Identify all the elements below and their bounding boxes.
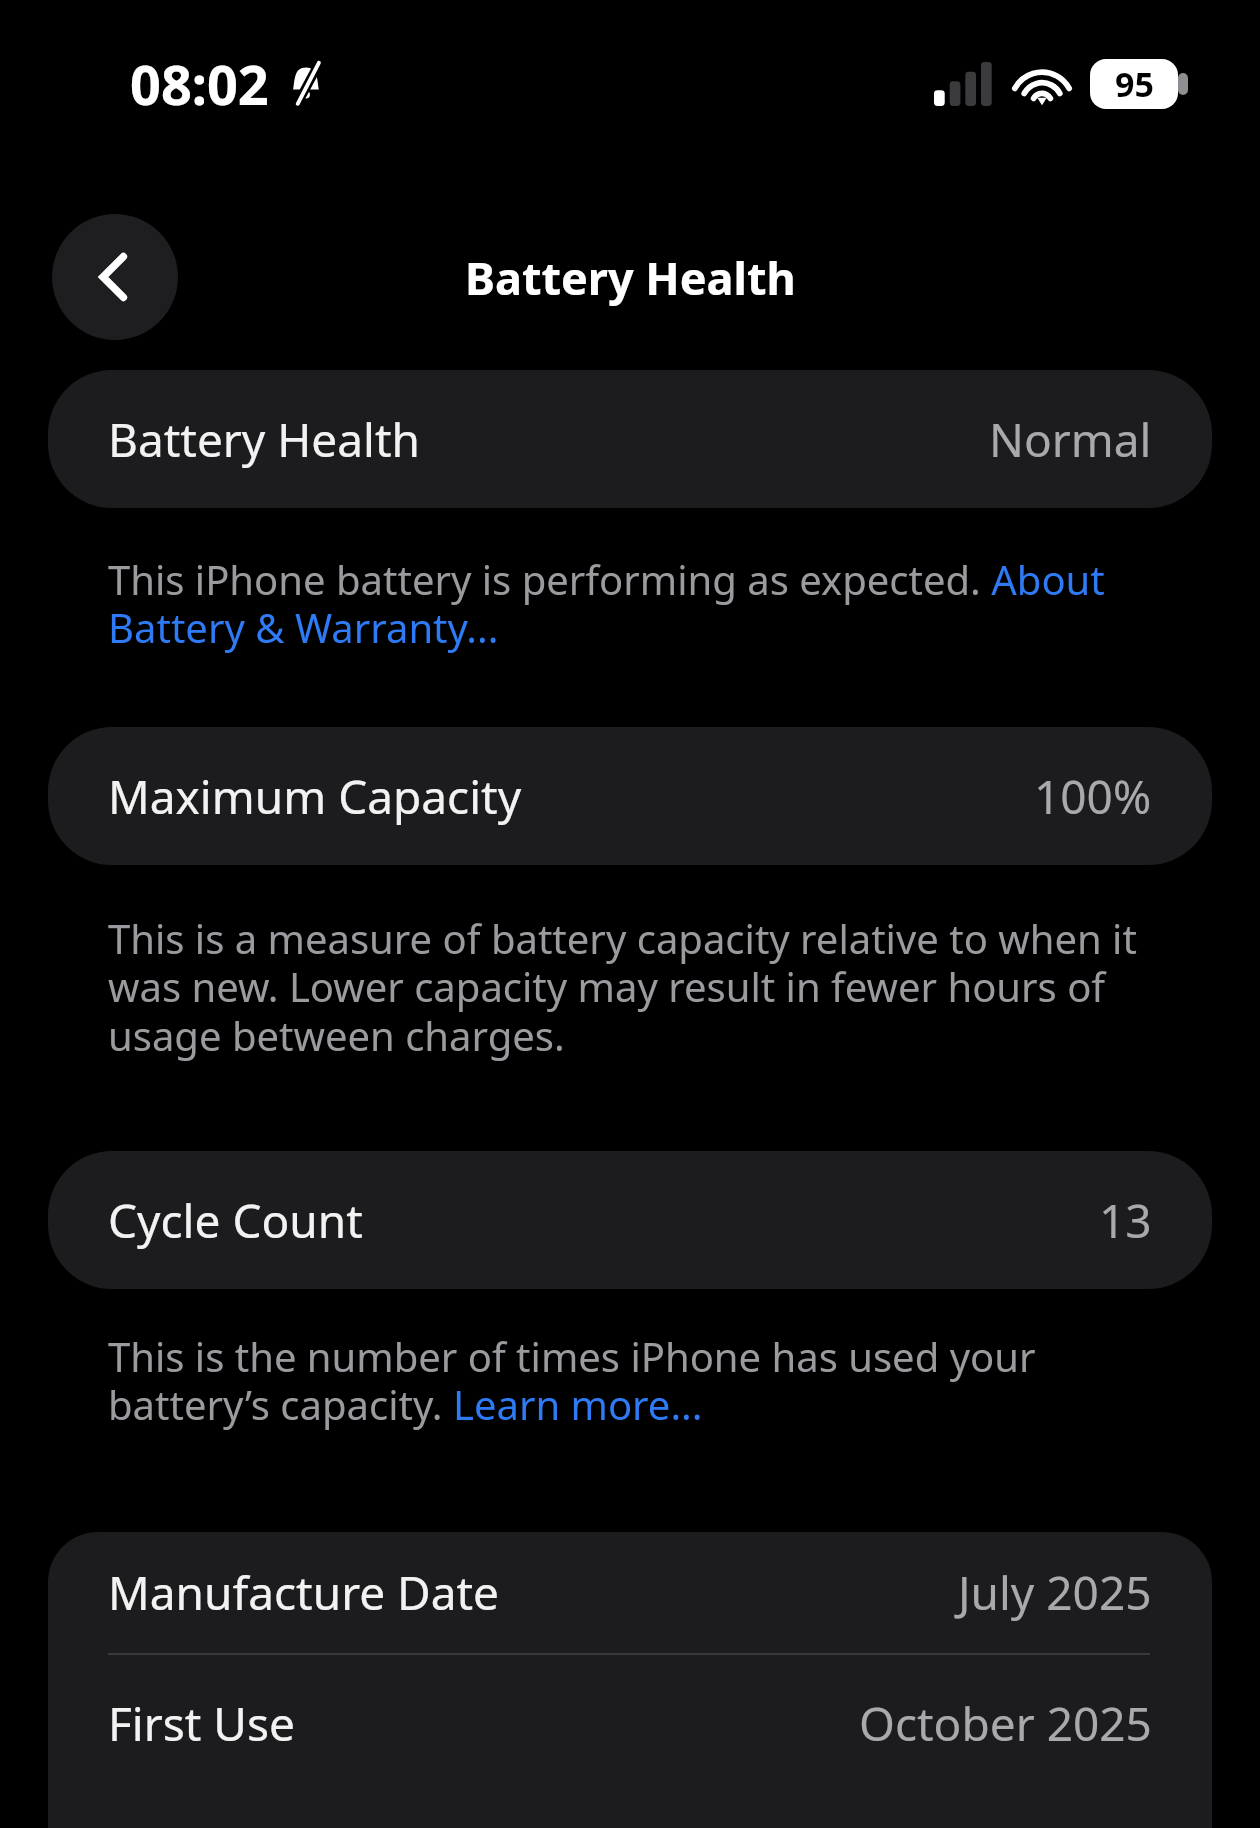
staticText: 13 [1099,1189,1152,1252]
staticText: This is a measure of battery capacity re… [108,911,1140,1063]
button[interactable]: Back [52,214,178,340]
button[interactable]: First Use [48,1655,1212,1792]
staticText: First Use [108,1692,295,1755]
button[interactable]: Manufacture Date [48,1532,1212,1653]
staticText: 100% [1034,765,1152,828]
button[interactable]: Battery Health [48,370,1212,508]
staticText: Cycle Count [108,1189,363,1252]
staticText: Battery Health [465,247,796,308]
staticText: July 2025 [958,1561,1152,1624]
staticText: October 2025 [859,1692,1152,1755]
staticText: Battery Health [108,408,421,471]
staticText: This is the number of times iPhone has u… [108,1329,1140,1432]
staticText: 08:02 [130,47,269,121]
staticText: Normal [989,408,1152,471]
button[interactable]: Maximum Capacity [48,727,1212,865]
staticText: Manufacture Date [108,1561,500,1624]
staticText: 95 [1115,61,1154,107]
button[interactable]: Cycle Count [48,1151,1212,1289]
staticText: Maximum Capacity [108,765,522,828]
staticText: This iPhone battery is performing as exp… [108,552,1140,655]
